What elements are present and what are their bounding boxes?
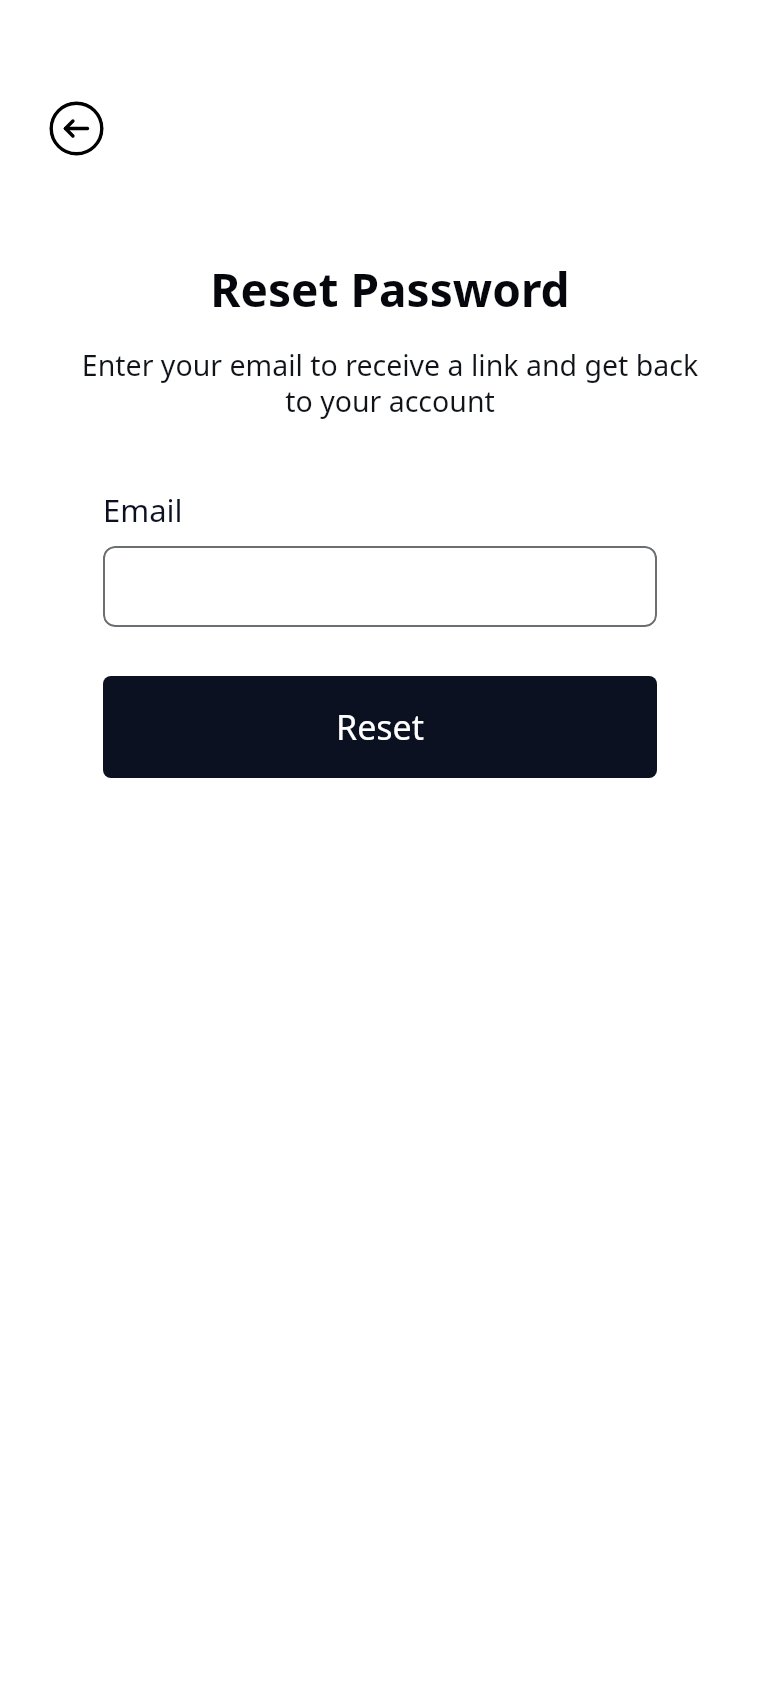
staticText: Enter your email to receive a link and g… [72,346,708,421]
button[interactable]: Email input [103,546,657,627]
button[interactable]: Back [49,101,104,156]
staticText: Reset Password [210,258,570,321]
staticText: Reset [336,704,425,750]
button[interactable]: Reset [103,676,657,778]
staticText: Email [103,489,183,531]
